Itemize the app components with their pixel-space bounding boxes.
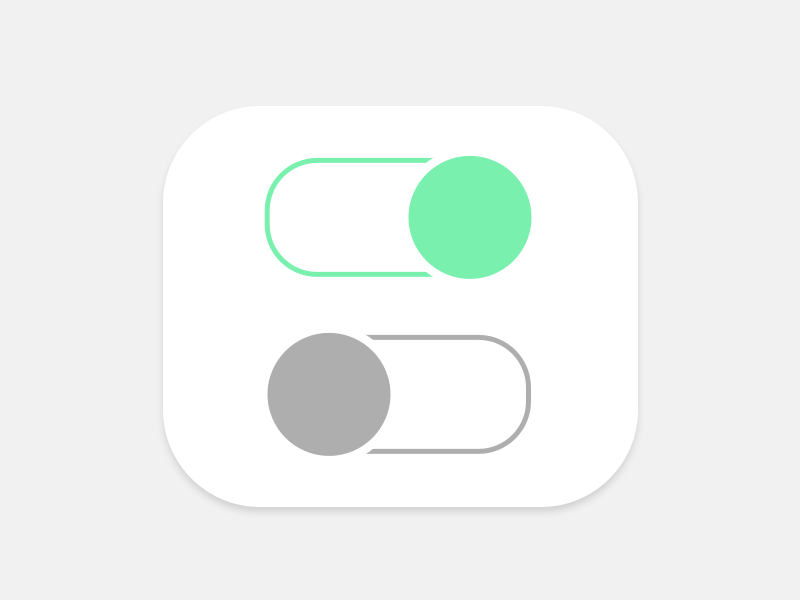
button[interactable]: Switch, on — [265, 156, 532, 279]
button[interactable]: Switch, off — [266, 333, 533, 456]
